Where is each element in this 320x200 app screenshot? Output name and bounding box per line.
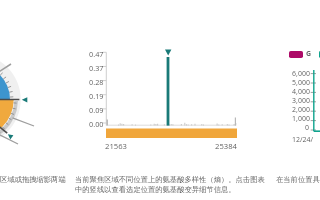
staticText: 当前聚焦区域不同位置上的氨基酸多样性（熵）。点击图表 中的竖线以查看选定位置的氨… <box>75 175 265 195</box>
staticText: 0 <box>305 123 310 132</box>
staticText: 0.28 <box>89 77 104 87</box>
button[interactable] <box>319 51 320 58</box>
staticText: 在当前位置具 <box>276 175 320 184</box>
staticText: 区域或拖拽缩影两端 <box>0 175 66 184</box>
staticText: 3,000 <box>292 96 310 105</box>
staticText: 4,000 <box>292 87 310 96</box>
button[interactable] <box>289 51 303 58</box>
staticText: 2,000 <box>292 105 310 114</box>
staticText: 0.19 <box>89 91 104 101</box>
staticText: 1,000 <box>292 114 310 123</box>
staticText: 25384 <box>215 141 237 151</box>
staticText: 0.00 <box>89 119 104 129</box>
staticText: G <box>306 49 312 59</box>
staticText: 6,000 <box>292 69 310 78</box>
staticText: 0.37 <box>89 63 104 73</box>
staticText: 5,000 <box>292 78 310 87</box>
staticText: 0.47 <box>89 49 104 59</box>
staticText: 12/24/ <box>292 135 314 145</box>
staticText: 0.09 <box>89 105 104 115</box>
staticText: 21563 <box>105 141 127 151</box>
